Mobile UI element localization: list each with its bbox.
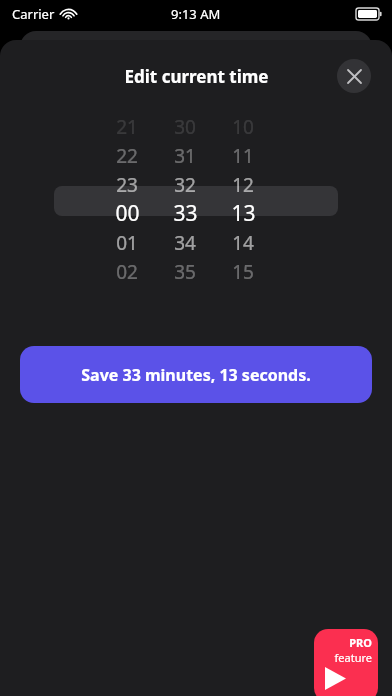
staticText: 15 (232, 259, 254, 285)
staticText: 01 (116, 230, 138, 256)
staticText: 13 (231, 199, 256, 228)
staticText: 32 (174, 172, 196, 198)
button[interactable]: 34 (170, 230, 200, 256)
button[interactable]: 22 (112, 143, 142, 169)
staticText: 14 (232, 230, 254, 256)
staticText: 12 (232, 172, 254, 198)
button[interactable]: 21 (112, 114, 142, 140)
staticText: feature (334, 650, 372, 665)
staticText: 02 (116, 259, 138, 285)
button[interactable]: 12 (228, 172, 258, 198)
staticText: 9:13 AM (171, 5, 221, 23)
staticText: 11 (232, 143, 254, 169)
staticText: 00 (115, 199, 140, 228)
staticText: PRO (349, 635, 372, 650)
staticText: 30 (174, 114, 196, 140)
staticText: Carrier (12, 5, 55, 23)
staticText: 35 (174, 259, 196, 285)
button[interactable]: 02 (112, 259, 142, 285)
staticText: 22 (116, 143, 138, 169)
button[interactable]: Save 33 minutes, 13 seconds. (20, 346, 372, 403)
button[interactable]: PRO feature video (314, 629, 378, 696)
button[interactable]: 33 (170, 199, 200, 228)
staticText: 10 (232, 114, 254, 140)
button[interactable]: 14 (228, 230, 258, 256)
button[interactable]: Close (337, 59, 371, 93)
button[interactable]: 13 (228, 199, 258, 228)
button[interactable]: 35 (170, 259, 200, 285)
button[interactable]: 10 (228, 114, 258, 140)
button[interactable]: 00 (112, 199, 142, 228)
staticText: 33 (173, 199, 198, 228)
staticText: 31 (174, 143, 196, 169)
staticText: 23 (116, 172, 138, 198)
staticText: Edit current time (124, 65, 269, 88)
staticText: Save 33 minutes, 13 seconds. (81, 364, 311, 386)
button[interactable]: 15 (228, 259, 258, 285)
button[interactable]: 31 (170, 143, 200, 169)
button[interactable]: 23 (112, 172, 142, 198)
staticText: 21 (116, 114, 138, 140)
staticText: 34 (174, 230, 196, 256)
button[interactable]: 32 (170, 172, 200, 198)
button[interactable]: 01 (112, 230, 142, 256)
button[interactable]: 11 (228, 143, 258, 169)
button[interactable]: 30 (170, 114, 200, 140)
